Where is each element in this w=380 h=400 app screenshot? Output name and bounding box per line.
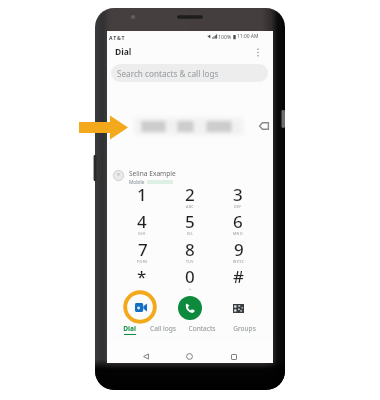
staticText: JKL [187, 231, 194, 235]
button[interactable]: Search contacts & call logs [111, 64, 268, 82]
button[interactable]: Contacts [185, 324, 219, 340]
button[interactable]: Dial [114, 324, 144, 340]
staticText: 6 [233, 210, 243, 233]
staticText: 0 [185, 265, 195, 288]
staticText: Selina Example [129, 169, 176, 178]
staticText: * [137, 265, 147, 288]
button[interactable]: 7 [122, 238, 162, 265]
staticText: TUV [186, 259, 194, 263]
staticText: # [233, 265, 244, 288]
staticText: 3 [233, 183, 243, 206]
staticText: WXYZ [233, 259, 244, 263]
staticText: DEF [234, 204, 242, 208]
button[interactable]: 2 [170, 183, 210, 210]
staticText: 7 [138, 238, 148, 261]
button[interactable]: Home [180, 347, 199, 366]
button[interactable]: Dialpad [230, 300, 247, 317]
button[interactable]: * [122, 265, 162, 292]
staticText: MNO [233, 231, 243, 235]
staticText: 4 [137, 210, 147, 233]
button[interactable]: 1 [122, 183, 162, 210]
button[interactable]: Call [178, 296, 202, 320]
staticText: 1 [137, 183, 147, 206]
button[interactable]: 3 [218, 183, 258, 210]
button[interactable]: More options [251, 45, 265, 59]
staticText: 2 [185, 183, 195, 206]
staticText: 8 [185, 238, 195, 261]
button[interactable]: # [218, 265, 258, 292]
button[interactable]: Recent apps [224, 347, 243, 366]
staticText: Mobile [129, 179, 145, 185]
staticText: Dial [115, 46, 132, 58]
staticText: GHI [138, 231, 146, 235]
staticText: Search contacts & call logs [117, 68, 219, 79]
staticText: Contacts [188, 324, 216, 333]
staticText: 11:00 AM [237, 33, 259, 40]
button[interactable]: 8 [170, 238, 210, 265]
staticText: + [189, 286, 192, 290]
staticText: AT&T [109, 34, 126, 41]
staticText: Groups [233, 324, 256, 333]
button[interactable]: Back [136, 347, 155, 366]
button[interactable]: 0 [170, 265, 210, 292]
button[interactable]: Video call [123, 290, 157, 324]
staticText: Dial [123, 324, 136, 333]
button[interactable]: 9 [218, 238, 258, 265]
staticText: 5 [185, 210, 195, 233]
staticText: ABC [186, 204, 194, 208]
staticText: 100% [218, 33, 232, 40]
button[interactable]: Call logs [146, 324, 180, 340]
staticText: PQRS [137, 259, 148, 263]
button[interactable]: 6 [218, 210, 258, 237]
button[interactable]: 5 [170, 210, 210, 237]
button[interactable]: 4 [122, 210, 162, 237]
button[interactable]: Selina Example [113, 167, 273, 183]
staticText: 9 [234, 238, 244, 261]
button[interactable]: Groups [229, 324, 259, 340]
staticText: Call logs [150, 324, 176, 333]
button[interactable]: Backspace [257, 119, 270, 132]
